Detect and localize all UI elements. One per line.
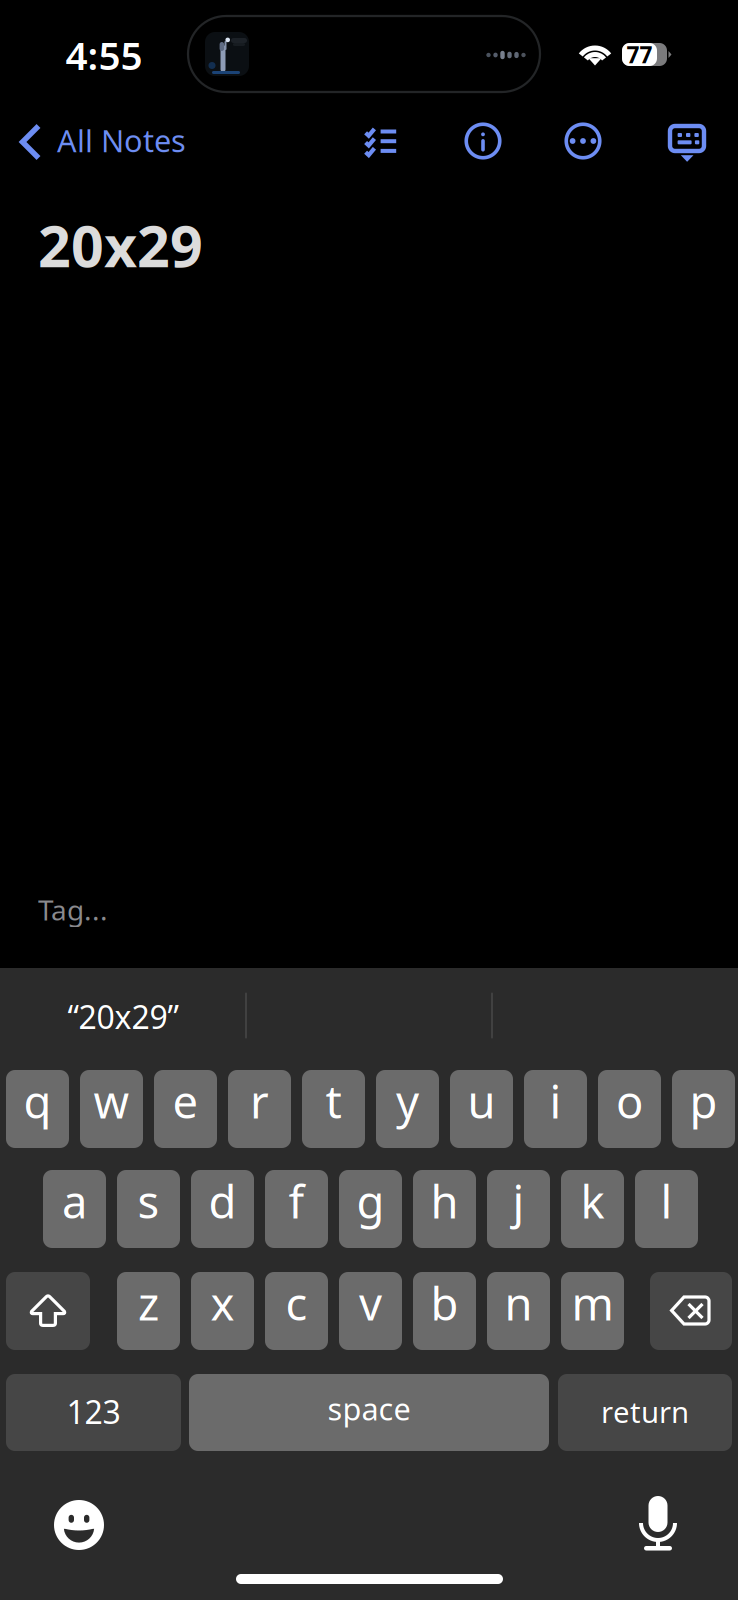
button[interactable]: f (265, 1170, 328, 1248)
button[interactable]: Delete (650, 1272, 732, 1350)
button[interactable]: “20x29” (0, 968, 246, 1065)
button[interactable]: l (635, 1170, 698, 1248)
button[interactable]: Checklist (355, 101, 407, 181)
staticText: k (580, 1171, 604, 1231)
staticText: i (549, 1071, 561, 1131)
staticText: b (430, 1273, 458, 1333)
button[interactable]: s (117, 1170, 180, 1248)
staticText: p (689, 1071, 717, 1131)
button[interactable]: c (265, 1272, 328, 1350)
staticText: w (93, 1071, 129, 1131)
button[interactable]: k (561, 1170, 624, 1248)
button[interactable]: y (376, 1070, 439, 1148)
button[interactable]: b (413, 1272, 476, 1350)
button[interactable]: v (339, 1272, 402, 1350)
staticText: f (288, 1171, 304, 1231)
staticText: s (137, 1171, 159, 1231)
staticText: t (325, 1071, 341, 1131)
button[interactable]: h (413, 1170, 476, 1248)
staticText: All Notes (57, 120, 186, 161)
button[interactable]: All Notes (0, 108, 215, 188)
button[interactable]: Hide Keyboard (663, 105, 715, 185)
button[interactable]: g (339, 1170, 402, 1248)
button[interactable]: space (189, 1374, 549, 1451)
staticText: Tag... (38, 891, 108, 928)
staticText: o (616, 1071, 643, 1131)
button[interactable]: w (80, 1070, 143, 1148)
staticText: z (138, 1273, 159, 1333)
staticText: y (396, 1071, 419, 1131)
staticText: e (172, 1071, 198, 1131)
staticText: l (660, 1171, 672, 1231)
button[interactable]: j (487, 1170, 550, 1248)
staticText: return (601, 1392, 689, 1431)
staticText: 20x29 (38, 207, 203, 283)
button[interactable]: return (558, 1374, 732, 1451)
staticText: m (571, 1273, 613, 1333)
button[interactable]: d (191, 1170, 254, 1248)
button[interactable]: r (228, 1070, 291, 1148)
staticText: “20x29” (67, 995, 178, 1038)
staticText: j (512, 1171, 524, 1231)
staticText: q (23, 1071, 51, 1131)
button[interactable]: Info (457, 101, 509, 181)
staticText: u (467, 1071, 495, 1131)
button[interactable]: i (524, 1070, 587, 1148)
staticText: x (210, 1273, 234, 1333)
button[interactable]: Shift (6, 1272, 90, 1350)
button[interactable]: 123 (6, 1374, 181, 1451)
button[interactable]: u (450, 1070, 513, 1148)
staticText: 77 (626, 39, 652, 69)
button[interactable]: n (487, 1272, 550, 1350)
staticText: space (327, 1388, 410, 1429)
button[interactable]: e (154, 1070, 217, 1148)
button[interactable]: z (117, 1272, 180, 1350)
staticText: d (208, 1171, 236, 1231)
button[interactable]: m (561, 1272, 624, 1350)
staticText: g (356, 1171, 384, 1231)
staticText: 123 (66, 1390, 120, 1433)
button[interactable]: q (6, 1070, 69, 1148)
button[interactable]: t (302, 1070, 365, 1148)
staticText: a (62, 1171, 87, 1231)
button[interactable]: o (598, 1070, 661, 1148)
button[interactable]: p (672, 1070, 735, 1148)
button[interactable]: a (43, 1170, 106, 1248)
staticText: v (359, 1273, 382, 1333)
button[interactable]: Dictate (616, 1483, 700, 1563)
button[interactable]: x (191, 1272, 254, 1350)
staticText: r (250, 1071, 269, 1131)
button[interactable]: More (557, 101, 609, 181)
button[interactable]: Emoji (37, 1485, 121, 1565)
staticText: c (285, 1273, 307, 1333)
staticText: 4:55 (65, 29, 142, 81)
staticText: h (430, 1171, 458, 1231)
staticText: n (504, 1273, 532, 1333)
